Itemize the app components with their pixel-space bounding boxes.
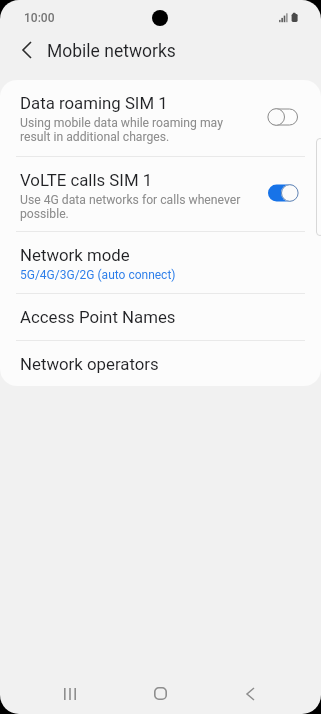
staticText: Data roaming SIM 1 [20,93,168,113]
button[interactable]: Data roaming SIM 1 [0,80,321,156]
staticText: Access Point Names [20,307,176,327]
button[interactable]: VoLTE calls SIM 1 [0,157,321,231]
staticText: Mobile networks [47,41,176,62]
button[interactable]: Off toggle [268,184,299,202]
button[interactable]: On toggle [268,108,299,126]
button[interactable]: Back [227,670,275,714]
staticText: Network mode [20,245,130,265]
button[interactable]: Home [136,670,184,714]
button[interactable]: Network operators [0,341,321,386]
staticText: VoLTE calls SIM 1 [20,170,153,190]
staticText: 10:00 [24,11,55,25]
staticText: Use 4G data networks for calls whenever … [20,193,241,221]
button[interactable]: Access Point Names [0,294,321,340]
staticText: Using mobile data while roaming may resu… [20,116,223,144]
button[interactable]: Recent apps [46,670,94,714]
button[interactable]: Navigate up [6,30,46,70]
staticText: Network operators [20,354,159,374]
staticText: 5G/4G/3G/2G (auto connect) [20,268,176,282]
button[interactable]: Network mode [0,232,321,293]
